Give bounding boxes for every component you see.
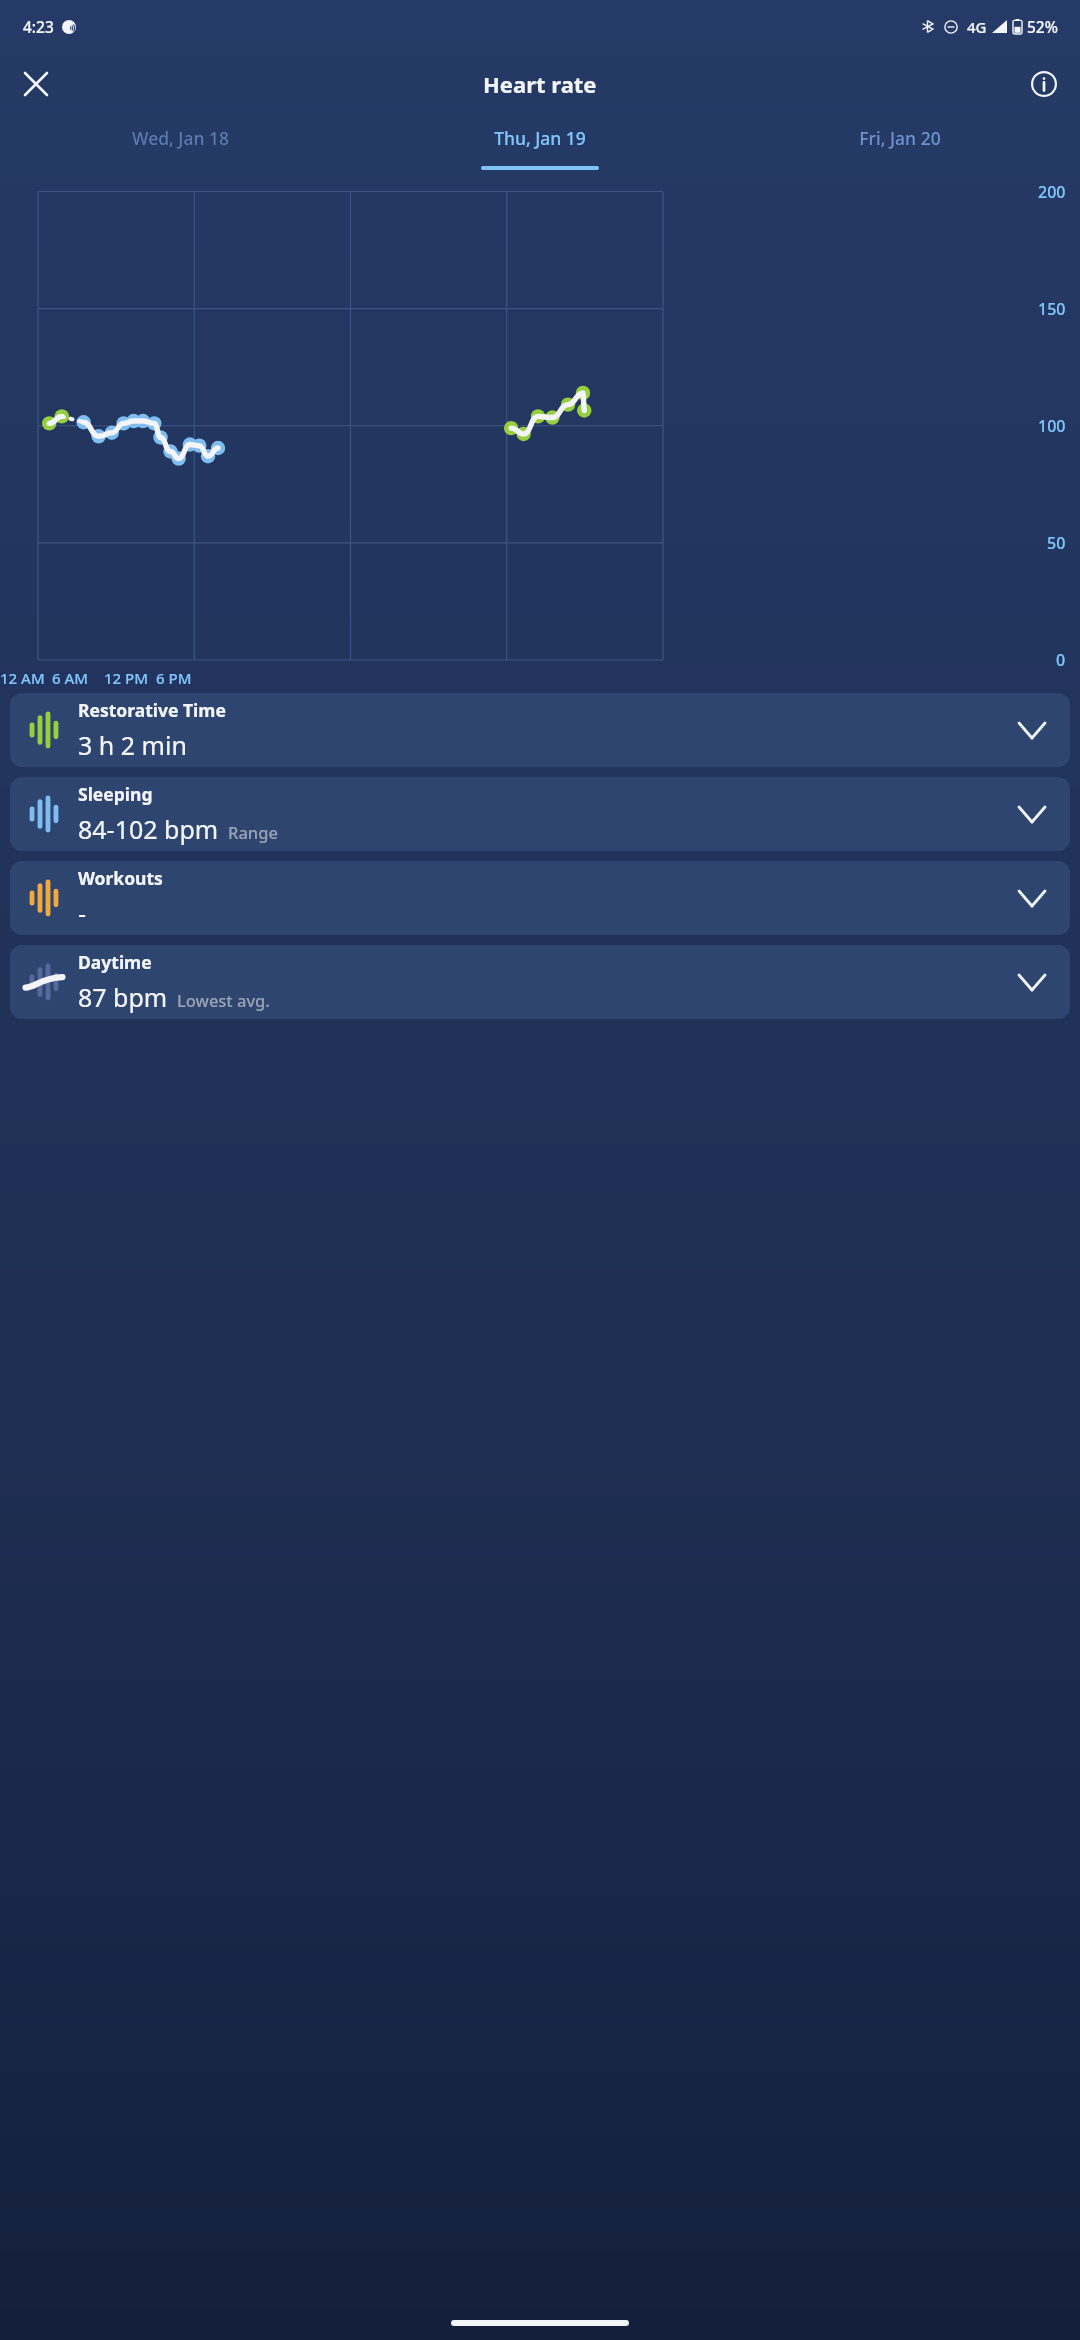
staticText: Fri, Jan 20 bbox=[859, 126, 941, 150]
staticText: Daytime bbox=[78, 950, 152, 974]
staticText: - bbox=[78, 896, 87, 930]
staticText: 87 bpm bbox=[78, 980, 168, 1014]
staticText: Heart rate bbox=[483, 69, 597, 99]
staticText: 4G bbox=[967, 17, 987, 37]
button[interactable]: Fri, Jan 20 bbox=[720, 115, 1080, 175]
staticText: Workouts bbox=[78, 866, 163, 890]
staticText: 100 bbox=[1038, 415, 1066, 437]
staticText: Range bbox=[228, 821, 278, 843]
button[interactable]: Expand Workouts bbox=[1010, 876, 1054, 920]
button[interactable]: Workouts bbox=[10, 861, 1070, 935]
button[interactable]: Restorative Time bbox=[10, 693, 1070, 767]
staticText: 150 bbox=[1038, 298, 1066, 320]
staticText: 3 h 2 min bbox=[78, 728, 187, 762]
staticText: 0 bbox=[1056, 649, 1066, 671]
button[interactable]: Expand Restorative Time bbox=[1010, 708, 1054, 752]
staticText: Restorative Time bbox=[78, 698, 226, 722]
staticText: 52% bbox=[1027, 16, 1058, 37]
button[interactable]: Daytime bbox=[10, 945, 1070, 1019]
staticText: 84-102 bpm bbox=[78, 812, 219, 846]
staticText: 200 bbox=[1038, 181, 1066, 203]
button[interactable]: Close bbox=[12, 60, 60, 108]
staticText: Thu, Jan 19 bbox=[494, 126, 586, 150]
button[interactable]: Sleeping bbox=[10, 777, 1070, 851]
staticText: Wed, Jan 18 bbox=[132, 126, 229, 150]
staticText: Sleeping bbox=[78, 782, 153, 806]
staticText: 6 PM bbox=[156, 668, 192, 688]
staticText: 12 AM bbox=[0, 668, 45, 688]
button[interactable]: Expand Sleeping bbox=[1010, 792, 1054, 836]
staticText: 50 bbox=[1047, 532, 1066, 554]
staticText: 12 PM bbox=[104, 668, 148, 688]
button[interactable]: Thu, Jan 19 bbox=[360, 115, 720, 175]
button[interactable]: Wed, Jan 18 bbox=[0, 115, 360, 175]
staticText: 4:23 bbox=[23, 16, 54, 37]
staticText: Lowest avg. bbox=[177, 989, 270, 1011]
staticText: 6 AM bbox=[52, 668, 89, 688]
button[interactable]: Expand Daytime bbox=[1010, 960, 1054, 1004]
button[interactable]: Info bbox=[1020, 60, 1068, 108]
